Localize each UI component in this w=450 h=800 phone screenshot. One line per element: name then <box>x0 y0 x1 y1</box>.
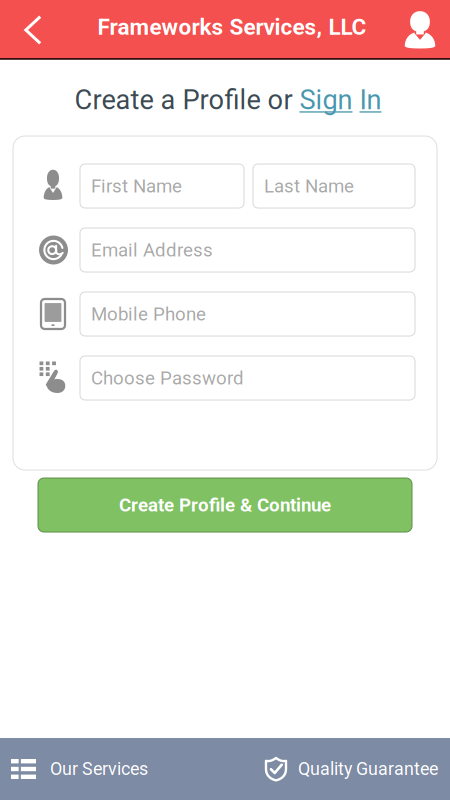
button[interactable]: Account <box>399 10 441 50</box>
staticText: Mobile Phone <box>91 303 206 325</box>
staticText: Create a Profile or <box>74 84 299 116</box>
staticText: Frameworks Services, LLC <box>97 14 366 40</box>
button[interactable]: Quality Guarantee <box>225 738 450 800</box>
staticText: Create Profile & Continue <box>119 494 331 516</box>
staticText <box>352 84 359 116</box>
staticText: Last Name <box>264 175 354 197</box>
staticText: Choose Password <box>91 367 244 389</box>
staticText: In <box>359 84 381 116</box>
staticText: Quality Guarantee <box>298 758 438 779</box>
staticText: First Name <box>91 175 182 197</box>
staticText: Email Address <box>91 239 213 261</box>
button[interactable]: Sign <box>299 84 381 116</box>
button[interactable]: Create Profile & Continue <box>38 478 412 532</box>
button[interactable]: Back <box>15 10 51 50</box>
staticText: Our Services <box>50 758 148 779</box>
button[interactable]: Our Services <box>0 738 225 800</box>
staticText: Sign <box>299 84 352 116</box>
